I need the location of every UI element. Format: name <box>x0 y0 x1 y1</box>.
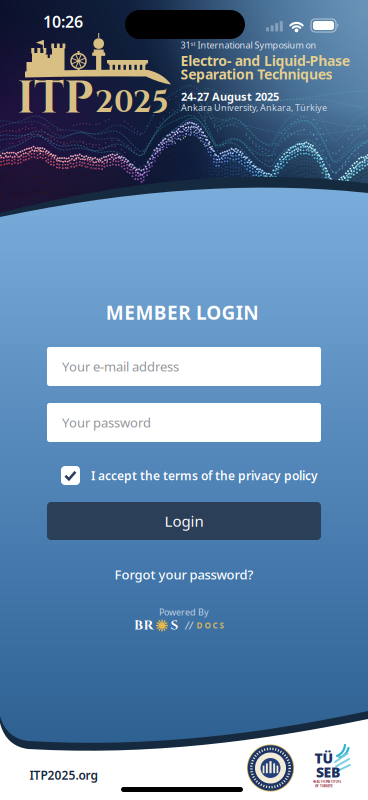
staticText: Your password <box>62 414 151 431</box>
staticText: TÜ <box>314 749 333 767</box>
staticText: Separation Techniques <box>180 65 332 83</box>
button[interactable]: Forgot your password? <box>84 564 284 584</box>
staticText: 2025 <box>95 83 169 123</box>
staticText: Ankara University, Ankara, Türkiye <box>181 101 327 113</box>
staticText: // <box>185 619 193 632</box>
staticText: BR <box>134 616 153 635</box>
button[interactable]: Your e-mail address <box>47 347 321 386</box>
staticText: HEALTH INSTITUTE <box>312 779 341 783</box>
staticText: International Symposium on <box>195 39 316 51</box>
staticText: I accept the terms of the privacy policy <box>91 467 318 483</box>
staticText: S <box>170 616 178 635</box>
staticText: ITP <box>17 69 94 129</box>
button[interactable]: Your password <box>47 403 321 442</box>
staticText: 24-27 August 2025 <box>181 89 279 104</box>
staticText: OF TÜRKİYE <box>315 784 333 788</box>
staticText: Electro- and Liquid-Phase <box>180 51 350 70</box>
staticText: Your e-mail address <box>62 358 179 375</box>
staticText: MEMBER LOGIN <box>106 300 258 325</box>
staticText: ITP2025.org <box>29 767 98 783</box>
staticText: st <box>190 39 195 47</box>
staticText: SEB <box>316 763 340 781</box>
button[interactable]: Login <box>47 502 321 540</box>
button[interactable]: ITP2025.org <box>19 767 109 783</box>
staticText: Login <box>164 511 203 531</box>
staticText: D O C S <box>196 620 223 631</box>
staticText: 31 <box>180 39 190 51</box>
staticText: Forgot your password? <box>114 566 253 583</box>
staticText: Powered By <box>159 606 209 618</box>
button[interactable]: I accept the terms of the privacy policy <box>61 463 323 487</box>
staticText: 10:26 <box>43 11 83 32</box>
